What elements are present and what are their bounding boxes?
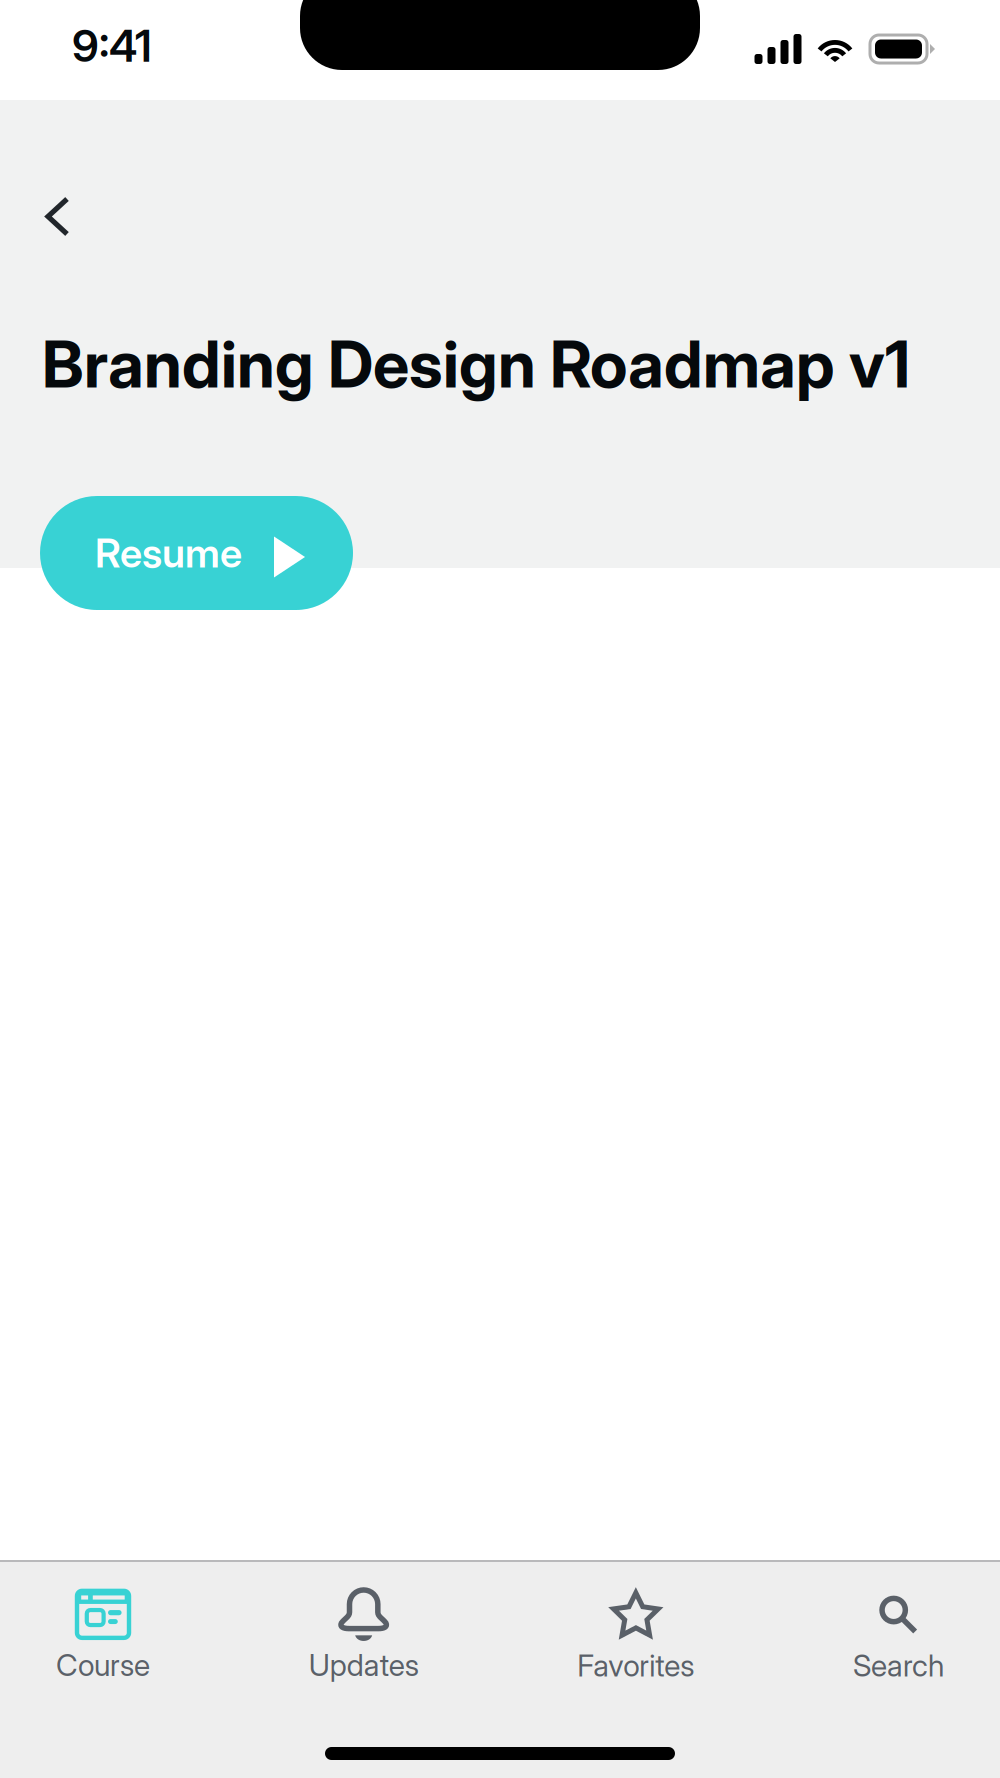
button[interactable]: Resume: [40, 496, 353, 610]
button[interactable]: Updates: [309, 1562, 419, 1682]
button[interactable]: Favorites: [577, 1562, 694, 1682]
staticText: Favorites: [577, 1647, 694, 1684]
staticText: Resume: [95, 529, 242, 577]
staticText: Course: [56, 1647, 150, 1683]
staticText: Search: [853, 1647, 944, 1684]
staticText: Branding Design Roadmap v1: [42, 325, 910, 403]
staticText: 9:41: [72, 19, 152, 72]
button[interactable]: Search: [853, 1562, 944, 1682]
button[interactable]: Back: [0, 100, 107, 264]
staticText: Updates: [309, 1647, 419, 1683]
button[interactable]: Course: [56, 1562, 150, 1682]
